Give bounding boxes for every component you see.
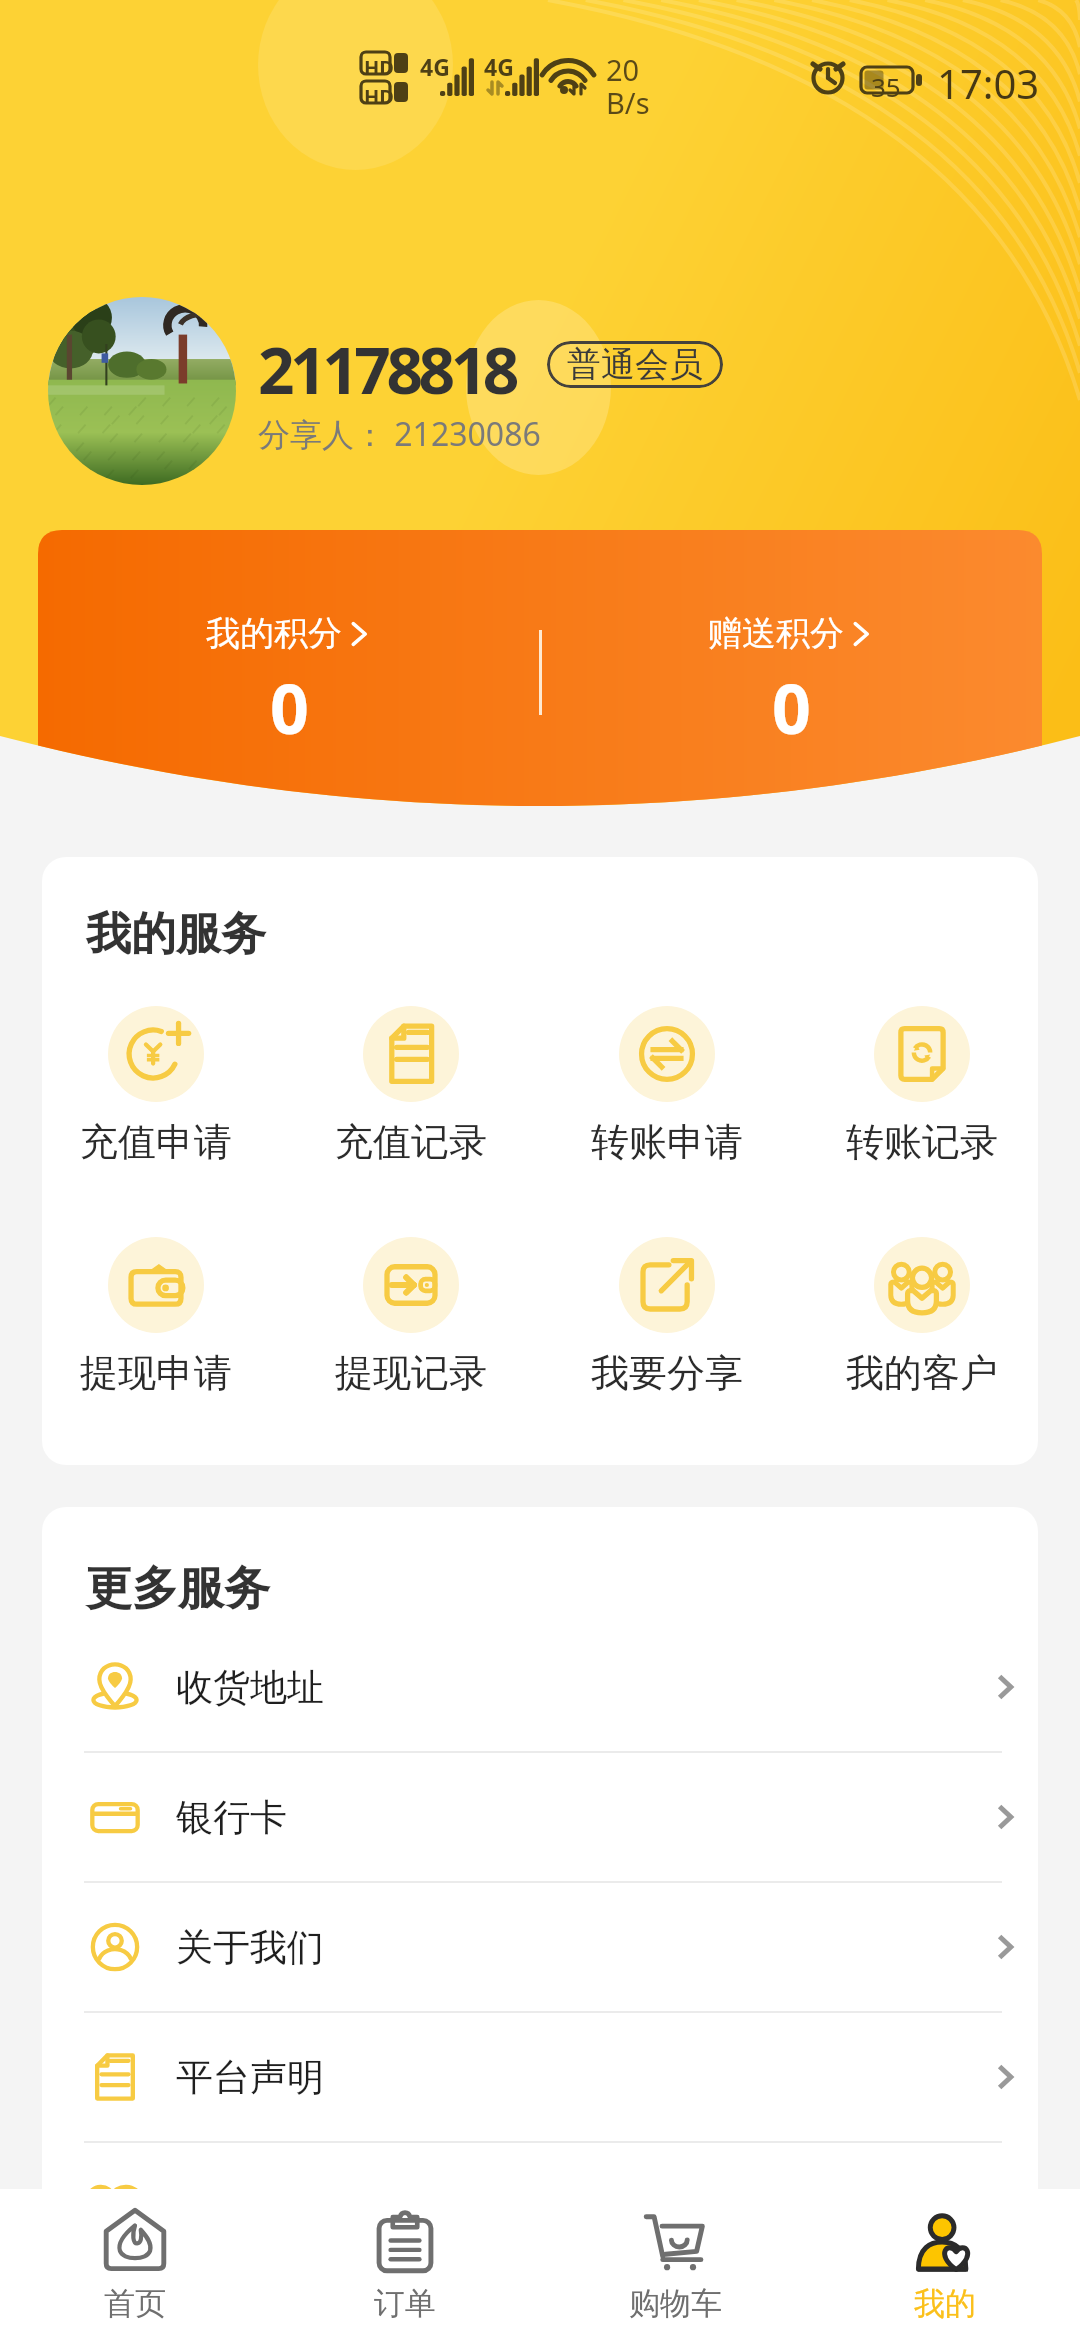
button[interactable]: 银行卡: [42, 1753, 1038, 1883]
staticText: 35: [871, 69, 901, 104]
button[interactable]: 意见反馈: [42, 2143, 1038, 2273]
staticText: 订单: [374, 2284, 436, 2323]
button[interactable]: 转账申请: [591, 1006, 743, 1166]
button[interactable]: 我要分享: [591, 1237, 743, 1397]
staticText: 提现记录: [335, 1349, 487, 1397]
staticText: 首页: [104, 2284, 166, 2323]
staticText: 4G: [420, 51, 450, 82]
staticText: 我的积分: [206, 612, 342, 655]
staticText: 转账记录: [846, 1118, 998, 1166]
staticText: 20 B/s: [606, 50, 650, 122]
button[interactable]: 普通会员: [547, 341, 723, 388]
staticText: 17:03: [937, 56, 1040, 110]
staticText: 关于我们: [176, 1924, 324, 1971]
staticText: 0: [772, 661, 811, 754]
staticText: 银行卡: [176, 1794, 287, 1841]
staticText: HD: [364, 54, 394, 81]
staticText: 充值记录: [335, 1118, 487, 1166]
staticText: 收货地址: [176, 1664, 324, 1711]
staticText: 21178818: [258, 326, 515, 413]
staticText: 购物车: [629, 2284, 722, 2323]
staticText: 提现申请: [80, 1349, 232, 1397]
button[interactable]: 订单: [270, 2206, 540, 2340]
button[interactable]: 首页: [0, 2206, 270, 2340]
staticText: 我的: [914, 2284, 976, 2323]
staticText: 充值申请: [80, 1118, 232, 1166]
button[interactable]: 平台声明: [42, 2013, 1038, 2143]
staticText: 平台声明: [176, 2054, 324, 2101]
button[interactable]: 提现申请: [80, 1237, 232, 1397]
button[interactable]: 关于我们: [42, 1883, 1038, 2013]
staticText: 0: [270, 661, 309, 754]
staticText: 分享人： 21230086: [258, 412, 541, 456]
staticText: 我的客户: [846, 1349, 998, 1397]
staticText: 更多服务: [86, 1560, 270, 1618]
button[interactable]: 我的客户: [846, 1237, 998, 1397]
staticText: 我要分享: [591, 1349, 743, 1397]
button[interactable]: 充值记录: [335, 1006, 487, 1166]
button[interactable]: 我的积分: [38, 612, 540, 754]
staticText: 转账申请: [591, 1118, 743, 1166]
button[interactable]: 转账记录: [846, 1006, 998, 1166]
staticText: 我的服务: [86, 906, 266, 963]
button[interactable]: 充值申请: [80, 1006, 232, 1166]
button[interactable]: [48, 297, 236, 485]
button[interactable]: 收货地址: [42, 1623, 1038, 1753]
button[interactable]: 购物车: [540, 2206, 810, 2340]
staticText: 赠送积分: [708, 612, 844, 655]
staticText: HD: [364, 83, 394, 110]
button[interactable]: 赠送积分: [540, 612, 1042, 754]
staticText: 普通会员: [567, 343, 703, 386]
button[interactable]: 提现记录: [335, 1237, 487, 1397]
staticText: 4G: [484, 51, 514, 82]
button[interactable]: 我的: [810, 2206, 1080, 2340]
